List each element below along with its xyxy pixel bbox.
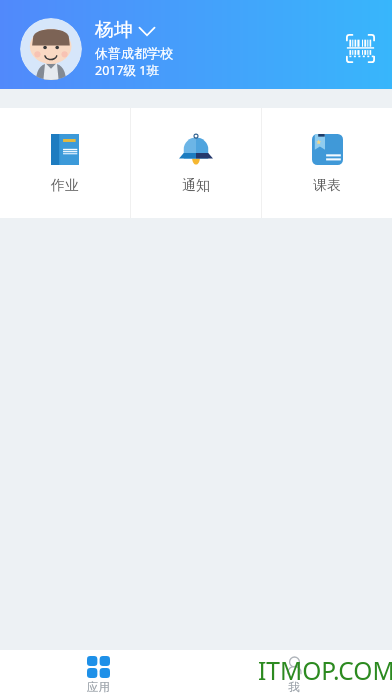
button[interactable]: Scan barcode <box>346 34 375 63</box>
staticText: 应用 <box>87 680 110 694</box>
button[interactable]: Profile avatar <box>20 18 82 80</box>
staticText: 课表 <box>313 177 341 195</box>
button[interactable]: 应用 <box>0 650 196 696</box>
button[interactable]: 作业 <box>0 108 130 218</box>
button[interactable]: 课表 <box>262 108 392 218</box>
staticText: 我 <box>288 680 300 694</box>
staticText: 作业 <box>51 177 79 195</box>
button[interactable]: 通知 <box>131 108 261 218</box>
staticText: 杨坤 <box>95 18 133 42</box>
staticText: 通知 <box>182 177 210 195</box>
button[interactable]: 我 <box>196 650 392 696</box>
staticText: ITMOP.COM <box>258 654 392 687</box>
staticText: 2017级 1班 <box>95 62 160 79</box>
staticText: 休普成都学校 <box>95 45 173 61</box>
